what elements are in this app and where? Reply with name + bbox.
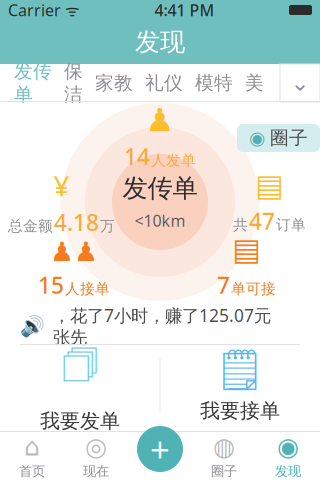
button[interactable]: 🗇 bbox=[0, 346, 160, 424]
staticText: 发现 bbox=[275, 463, 301, 480]
staticText: ♟ bbox=[145, 102, 174, 138]
staticText: ◉ bbox=[277, 432, 299, 461]
staticText: ⌂ bbox=[24, 432, 40, 461]
staticText: 发现 bbox=[135, 26, 185, 57]
button[interactable]: ◎ bbox=[64, 432, 128, 480]
staticText: 美 bbox=[245, 71, 264, 94]
staticText: ▤ bbox=[232, 232, 261, 267]
staticText: 共 bbox=[233, 216, 248, 234]
staticText: 4:41 PM bbox=[154, 0, 214, 21]
staticText: ♟♟ bbox=[50, 237, 98, 267]
staticText: 发传单 bbox=[14, 60, 52, 106]
staticText: 单可接 bbox=[231, 280, 276, 298]
staticText: 人发单 bbox=[151, 151, 196, 169]
staticText: 🗇 bbox=[61, 337, 98, 403]
staticText: 🔊 bbox=[20, 315, 45, 337]
button[interactable]: ◍ bbox=[192, 432, 256, 480]
staticText: ▤ bbox=[255, 168, 284, 203]
staticText: ，花了7小时，赚了125.07元 张先 bbox=[53, 304, 291, 348]
button[interactable]: ◉ bbox=[256, 432, 320, 480]
staticText: 家教 bbox=[95, 71, 133, 94]
button[interactable]: 🔊 bbox=[0, 308, 320, 344]
button[interactable]: 保洁 bbox=[58, 64, 89, 102]
staticText: ◍ bbox=[213, 432, 235, 461]
button[interactable]: ◉ bbox=[237, 124, 320, 152]
staticText: 模特 bbox=[195, 71, 233, 94]
staticText: 我要发单 bbox=[40, 409, 120, 433]
staticText: 礼仪 bbox=[145, 71, 183, 94]
staticText: ¥ bbox=[53, 167, 69, 204]
button[interactable]: 礼仪 bbox=[139, 64, 189, 102]
button[interactable]: 新建 bbox=[134, 423, 186, 475]
staticText: 万 bbox=[100, 217, 115, 235]
staticText: 首页 bbox=[19, 463, 45, 480]
staticText: ◎ bbox=[85, 432, 107, 461]
staticText: 圈子 bbox=[211, 463, 237, 480]
button[interactable]: 展开分类 bbox=[280, 64, 320, 102]
staticText: Carrier ᯤ bbox=[8, 0, 80, 21]
staticText: 15 bbox=[38, 270, 64, 300]
staticText: 现在 bbox=[83, 463, 109, 480]
button[interactable]: 模特 bbox=[189, 64, 239, 102]
staticText: 保洁 bbox=[64, 60, 83, 106]
button[interactable]: 🗒 bbox=[160, 346, 320, 424]
staticText: 总金额 bbox=[8, 217, 53, 235]
button[interactable]: ⌂ bbox=[0, 432, 64, 480]
staticText: 47 bbox=[249, 206, 275, 236]
staticText: <10km bbox=[134, 210, 185, 231]
staticText: 人接单 bbox=[65, 280, 110, 298]
button[interactable]: 家教 bbox=[89, 64, 139, 102]
staticText: 我要接单 bbox=[200, 399, 280, 423]
staticText: 圈子 bbox=[270, 126, 308, 149]
staticText: 7 bbox=[217, 270, 230, 300]
staticText: 🗒 bbox=[214, 347, 265, 393]
staticText: + bbox=[150, 426, 170, 472]
staticText: 订单 bbox=[276, 216, 306, 234]
button[interactable]: 发传单 bbox=[8, 64, 58, 102]
staticText: 4.18 bbox=[54, 207, 99, 237]
staticText: 14 bbox=[124, 141, 150, 171]
staticText: ◉ bbox=[249, 127, 265, 149]
staticText: 发传单 bbox=[122, 173, 197, 204]
button[interactable]: 美 bbox=[239, 64, 270, 102]
staticText: ⌄ bbox=[290, 70, 309, 96]
